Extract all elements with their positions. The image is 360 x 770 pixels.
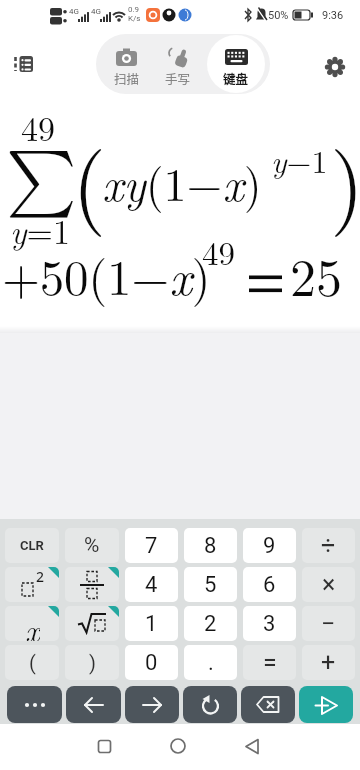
- button[interactable]: [299, 686, 353, 723]
- staticText: 扫描: [114, 69, 140, 87]
- staticText: 6: [263, 572, 276, 598]
- staticText: x: [25, 606, 40, 641]
- button[interactable]: x: [5, 606, 59, 641]
- button[interactable]: 0: [125, 645, 178, 680]
- staticText: xy(1−x): [102, 149, 262, 214]
- button[interactable]: 6: [243, 567, 296, 602]
- staticText: 2: [204, 611, 217, 637]
- staticText: ): [330, 116, 360, 241]
- staticText: 9: [263, 533, 276, 559]
- button[interactable]: .: [184, 645, 237, 680]
- staticText: ×: [322, 570, 336, 599]
- button[interactable]: 7: [125, 528, 178, 563]
- button[interactable]: [66, 686, 121, 723]
- button[interactable]: −: [302, 606, 355, 641]
- button[interactable]: 手写: [152, 36, 204, 92]
- staticText: y−1: [271, 137, 328, 182]
- button[interactable]: ×: [302, 567, 355, 602]
- button[interactable]: [86, 726, 122, 766]
- button[interactable]: 5: [184, 567, 237, 602]
- staticText: 0.9: [128, 5, 140, 14]
- staticText: +50(1−x): [2, 240, 211, 309]
- button[interactable]: [65, 567, 119, 602]
- staticText: 4G: [69, 7, 79, 16]
- button[interactable]: 8: [184, 528, 237, 563]
- button[interactable]: 2: [184, 606, 237, 641]
- staticText: 50%: [268, 9, 289, 22]
- button[interactable]: 键盘: [210, 36, 262, 92]
- staticText: (: [72, 116, 107, 241]
- staticText: (: [29, 651, 36, 674]
- button[interactable]: CLR: [5, 528, 59, 563]
- staticText: y=1: [10, 206, 70, 254]
- button[interactable]: ): [65, 645, 119, 680]
- staticText: 键盘: [223, 69, 249, 87]
- button[interactable]: %: [65, 528, 119, 563]
- button[interactable]: 4: [125, 567, 178, 602]
- button[interactable]: 3: [243, 606, 296, 641]
- button[interactable]: [8, 50, 44, 86]
- staticText: K/s: [128, 14, 141, 23]
- button[interactable]: 9: [243, 528, 296, 563]
- staticText: 2: [36, 567, 45, 586]
- staticText: 25: [290, 237, 343, 311]
- staticText: ∑: [6, 147, 77, 214]
- staticText: 1: [145, 611, 158, 637]
- button[interactable]: =: [243, 645, 296, 680]
- staticText: 4: [145, 572, 158, 598]
- staticText: =: [263, 648, 277, 677]
- button[interactable]: [160, 726, 196, 766]
- staticText: 7: [145, 533, 158, 559]
- staticText: 3: [263, 611, 276, 637]
- button[interactable]: 扫描: [101, 36, 153, 92]
- button[interactable]: [125, 686, 179, 723]
- staticText: 49: [202, 228, 235, 275]
- staticText: CLR: [20, 538, 44, 553]
- staticText: 8: [204, 533, 217, 559]
- button[interactable]: 2: [5, 567, 59, 602]
- button[interactable]: [318, 50, 352, 84]
- staticText: +: [321, 648, 336, 677]
- button[interactable]: [183, 686, 237, 723]
- staticText: 9:36: [322, 9, 344, 22]
- staticText: %: [84, 533, 100, 558]
- staticText: 0: [145, 650, 158, 676]
- staticText: −: [321, 609, 336, 638]
- staticText: 5: [204, 572, 217, 598]
- button[interactable]: +: [302, 645, 355, 680]
- staticText: 手写: [165, 69, 191, 87]
- staticText: ÷: [321, 531, 336, 560]
- button[interactable]: [7, 686, 62, 723]
- button[interactable]: (: [5, 645, 59, 680]
- staticText: 49: [21, 103, 55, 151]
- button[interactable]: 1: [125, 606, 178, 641]
- button[interactable]: ÷: [302, 528, 355, 563]
- button[interactable]: [241, 686, 295, 723]
- staticText: .: [208, 650, 214, 676]
- button[interactable]: [234, 726, 270, 766]
- staticText: 4G: [91, 7, 101, 16]
- staticText: ): [89, 651, 96, 674]
- button[interactable]: [65, 606, 119, 641]
